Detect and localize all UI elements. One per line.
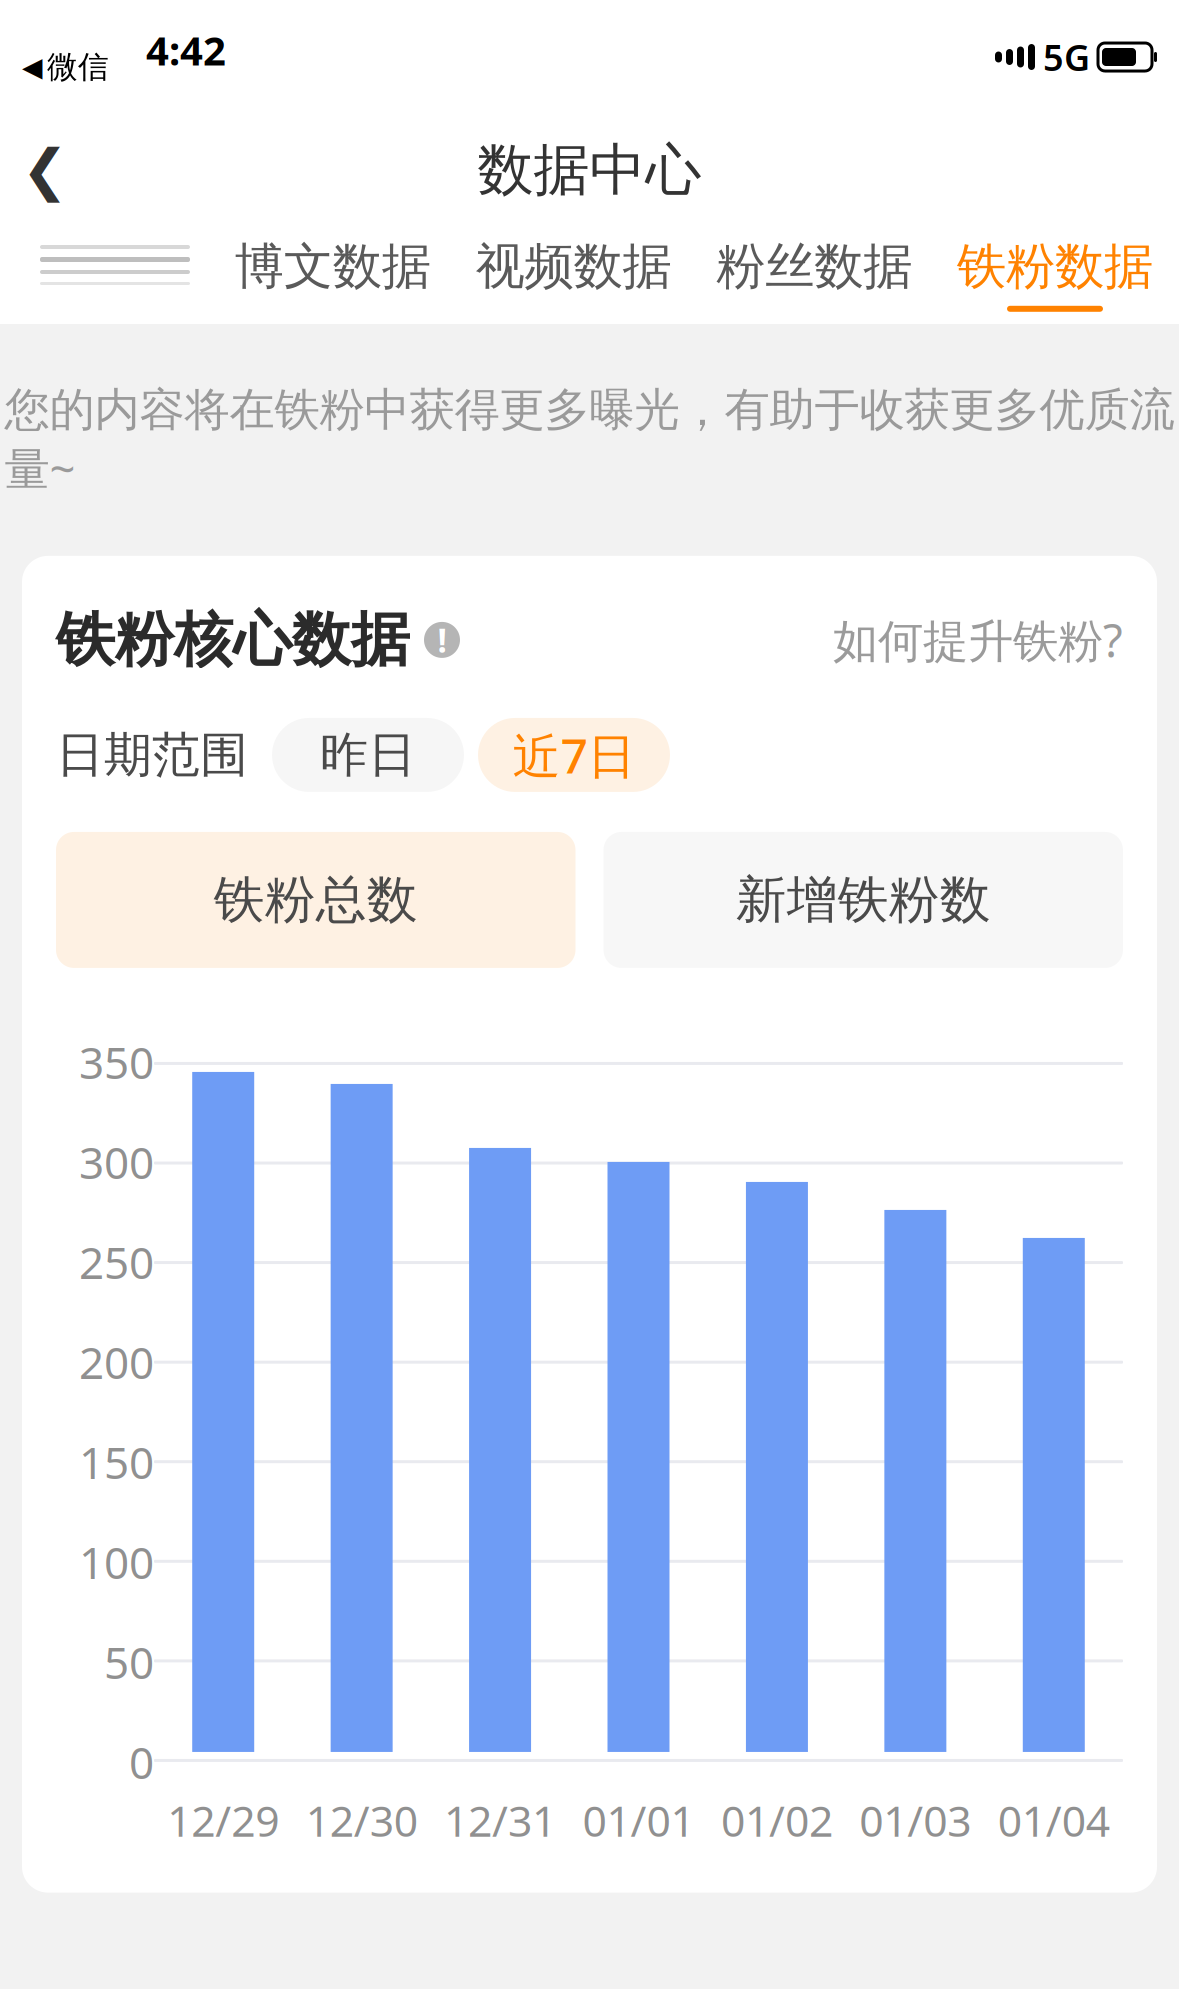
staticText: 50 — [104, 1633, 154, 1691]
staticText: 250 — [79, 1233, 154, 1291]
staticText: 350 — [79, 1033, 154, 1091]
button[interactable]: 铁粉数据 — [957, 226, 1153, 318]
staticText: 昨日 — [320, 725, 416, 784]
button[interactable]: 粉丝数据 — [716, 226, 912, 318]
staticText: 视频数据 — [475, 236, 671, 297]
staticText: 您的内容将在铁粉中获得更多曝光，有助于收获更多优质流量~ — [4, 382, 1174, 498]
staticText: 铁粉数据 — [957, 236, 1153, 297]
staticText: 5G — [1043, 33, 1090, 81]
staticText: ◀ — [22, 52, 43, 82]
staticText: 新增铁粉数 — [736, 869, 991, 931]
staticText: 0 — [129, 1733, 154, 1791]
staticText: 12/31 — [444, 1792, 556, 1849]
staticText: 4:42 — [146, 23, 226, 76]
staticText: 粉丝数据 — [716, 236, 912, 297]
staticText: 日期范围 — [56, 725, 248, 784]
button[interactable]: 如何提升铁粉? — [833, 610, 1123, 670]
staticText: 12/30 — [306, 1792, 418, 1849]
staticText: 如何提升铁粉? — [833, 610, 1123, 670]
button[interactable]: 昨日 — [272, 718, 464, 792]
staticText: 01/02 — [721, 1792, 833, 1849]
staticText: 01/03 — [859, 1792, 971, 1849]
staticText: 01/01 — [582, 1792, 694, 1849]
button[interactable]: 视频数据 — [475, 226, 671, 318]
staticText: ! — [437, 618, 446, 662]
button[interactable]: 铁粉总数 — [56, 832, 575, 968]
staticText: 12/29 — [167, 1792, 279, 1849]
staticText: 博文数据 — [235, 236, 431, 297]
button[interactable]: 博文数据 — [235, 226, 431, 318]
button[interactable]: 近7日 — [478, 718, 670, 792]
button[interactable]: 新增铁粉数 — [603, 832, 1123, 968]
staticText: 铁粉核心数据 — [56, 604, 410, 676]
staticText: 100 — [79, 1533, 154, 1591]
button[interactable]: 返回 — [0, 125, 90, 215]
staticText: 150 — [79, 1433, 154, 1491]
staticText: 近7日 — [512, 723, 635, 787]
button[interactable]: 说明 — [410, 618, 466, 662]
staticText: 01/04 — [998, 1792, 1110, 1849]
staticText: 200 — [79, 1333, 154, 1391]
staticText: 微信 — [47, 48, 109, 86]
staticText: ❮ — [21, 138, 68, 202]
staticText: 300 — [79, 1133, 154, 1191]
staticText: 铁粉总数 — [214, 869, 418, 931]
staticText: 数据中心 — [477, 136, 701, 204]
button[interactable]: ◀ — [0, 34, 109, 86]
